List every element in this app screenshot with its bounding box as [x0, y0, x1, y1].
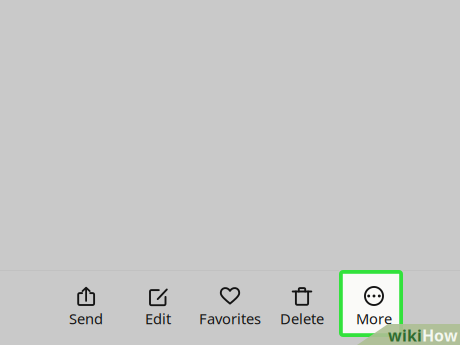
staticText: Favorites: [199, 309, 261, 328]
staticText: How: [422, 325, 458, 345]
staticText: Send: [69, 309, 103, 328]
button[interactable]: Edit: [122, 284, 194, 326]
button[interactable]: Favorites: [194, 284, 266, 326]
staticText: wiki: [388, 325, 422, 345]
staticText: More: [356, 309, 392, 328]
staticText: Edit: [145, 309, 171, 328]
staticText: Delete: [280, 309, 324, 328]
button[interactable]: Delete: [266, 284, 338, 326]
button[interactable]: Send: [50, 284, 122, 326]
button[interactable]: More: [338, 284, 410, 326]
